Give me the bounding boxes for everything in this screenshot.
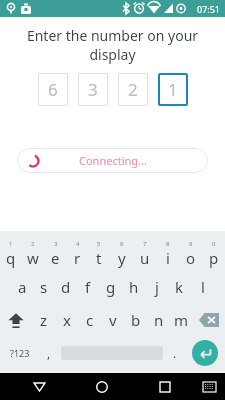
staticText: t: [96, 248, 102, 268]
button[interactable]: 8: [156, 237, 179, 270]
button[interactable]: h: [122, 270, 145, 303]
button[interactable]: m: [170, 303, 193, 336]
button[interactable]: g: [99, 270, 122, 303]
staticText: Enter the number on your display: [12, 26, 213, 64]
button[interactable]: 0: [202, 237, 225, 270]
button[interactable]: 5: [88, 237, 110, 270]
button[interactable]: x: [55, 303, 78, 336]
button[interactable]: Enter: [192, 340, 218, 366]
button[interactable]: z: [32, 303, 55, 336]
button[interactable]: Recent apps: [150, 373, 180, 400]
staticText: 3: [88, 78, 98, 101]
staticText: v: [109, 310, 117, 330]
button[interactable]: a: [11, 270, 33, 303]
staticText: n: [154, 310, 164, 330]
button[interactable]: 2: [118, 73, 148, 106]
button[interactable]: 1: [158, 73, 188, 106]
staticText: ,: [47, 345, 51, 361]
staticText: j: [155, 277, 159, 297]
staticText: i: [166, 248, 170, 268]
button[interactable]: 3: [78, 73, 108, 106]
button[interactable]: Backspace: [193, 303, 225, 336]
button[interactable]: Shift: [0, 303, 32, 336]
staticText: g: [106, 277, 116, 297]
button[interactable]: 7: [133, 237, 156, 270]
button[interactable]: 2: [22, 237, 44, 270]
staticText: h: [129, 277, 139, 297]
staticText: e: [51, 248, 60, 268]
staticText: o: [186, 248, 196, 268]
button[interactable]: b: [124, 303, 147, 336]
staticText: m: [174, 310, 189, 330]
button[interactable]: 6: [110, 237, 133, 270]
button[interactable]: v: [101, 303, 124, 336]
staticText: 5: [97, 240, 101, 248]
staticText: 2: [31, 240, 35, 248]
staticText: b: [131, 310, 141, 330]
staticText: 3: [54, 240, 58, 248]
staticText: a: [18, 277, 27, 297]
staticText: q: [6, 248, 16, 268]
button[interactable]: 9: [179, 237, 202, 270]
button[interactable]: l: [191, 270, 214, 303]
button[interactable]: Hide keyboard: [196, 374, 222, 400]
staticText: 0: [212, 240, 216, 248]
staticText: s: [40, 277, 48, 297]
button[interactable]: d: [55, 270, 77, 303]
staticText: 9: [189, 240, 193, 248]
button[interactable]: 4: [66, 237, 88, 270]
staticText: p: [209, 248, 219, 268]
button[interactable]: j: [145, 270, 168, 303]
staticText: f: [85, 277, 91, 297]
button[interactable]: f: [77, 270, 99, 303]
button[interactable]: k: [168, 270, 191, 303]
staticText: d: [61, 277, 71, 297]
staticText: .: [173, 345, 177, 361]
button[interactable]: 3: [44, 237, 66, 270]
staticText: 6: [120, 240, 124, 248]
staticText: 2: [128, 78, 138, 101]
button[interactable]: Connecting...: [17, 148, 208, 173]
button[interactable]: ?123: [0, 336, 39, 369]
button[interactable]: c: [78, 303, 101, 336]
staticText: l: [201, 277, 205, 297]
button[interactable]: ,: [39, 336, 59, 369]
staticText: w: [27, 248, 39, 268]
button[interactable]: Home: [87, 373, 117, 400]
staticText: k: [175, 277, 184, 297]
staticText: r: [74, 248, 81, 268]
button[interactable]: n: [147, 303, 170, 336]
staticText: 07:51: [197, 3, 221, 15]
button[interactable]: Back: [24, 373, 54, 400]
staticText: c: [86, 310, 94, 330]
staticText: 8: [166, 240, 170, 248]
staticText: y: [118, 248, 126, 268]
staticText: 4: [76, 240, 80, 248]
button[interactable]: 1: [0, 237, 22, 270]
staticText: 1: [9, 240, 13, 248]
button[interactable]: s: [33, 270, 55, 303]
staticText: z: [40, 310, 48, 330]
button[interactable]: .: [165, 336, 185, 369]
staticText: x: [63, 310, 71, 330]
button[interactable]: 6: [38, 73, 68, 106]
staticText: 1: [168, 78, 178, 101]
staticText: u: [140, 248, 150, 268]
staticText: Connecting...: [79, 153, 147, 168]
staticText: ?123: [10, 347, 30, 359]
staticText: 7: [143, 240, 147, 248]
staticText: 6: [48, 78, 58, 101]
